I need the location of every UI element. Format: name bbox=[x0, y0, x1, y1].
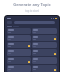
button[interactable]: Topic 11 bbox=[7, 65, 31, 72]
button[interactable]: Topic 8 bbox=[32, 49, 57, 56]
button[interactable]: Topic 5 bbox=[7, 42, 31, 48]
button[interactable]: Topic 6 bbox=[32, 42, 57, 48]
button[interactable]: Topic 7 bbox=[7, 49, 31, 56]
staticText: tap to start bbox=[25, 9, 39, 13]
staticText: Generate any Topic bbox=[13, 2, 51, 7]
button[interactable]: Topic 12 bbox=[32, 65, 57, 72]
button[interactable]: Topic 10 bbox=[32, 57, 57, 64]
button[interactable]: Topic 4 bbox=[32, 35, 57, 41]
button[interactable]: Search bbox=[14, 21, 55, 24]
button[interactable]: Topic 9 bbox=[7, 57, 31, 64]
button[interactable]: Topic 1 bbox=[7, 28, 31, 34]
button[interactable]: Topic 2 bbox=[32, 28, 57, 34]
button[interactable]: Topic 3 bbox=[7, 35, 31, 41]
